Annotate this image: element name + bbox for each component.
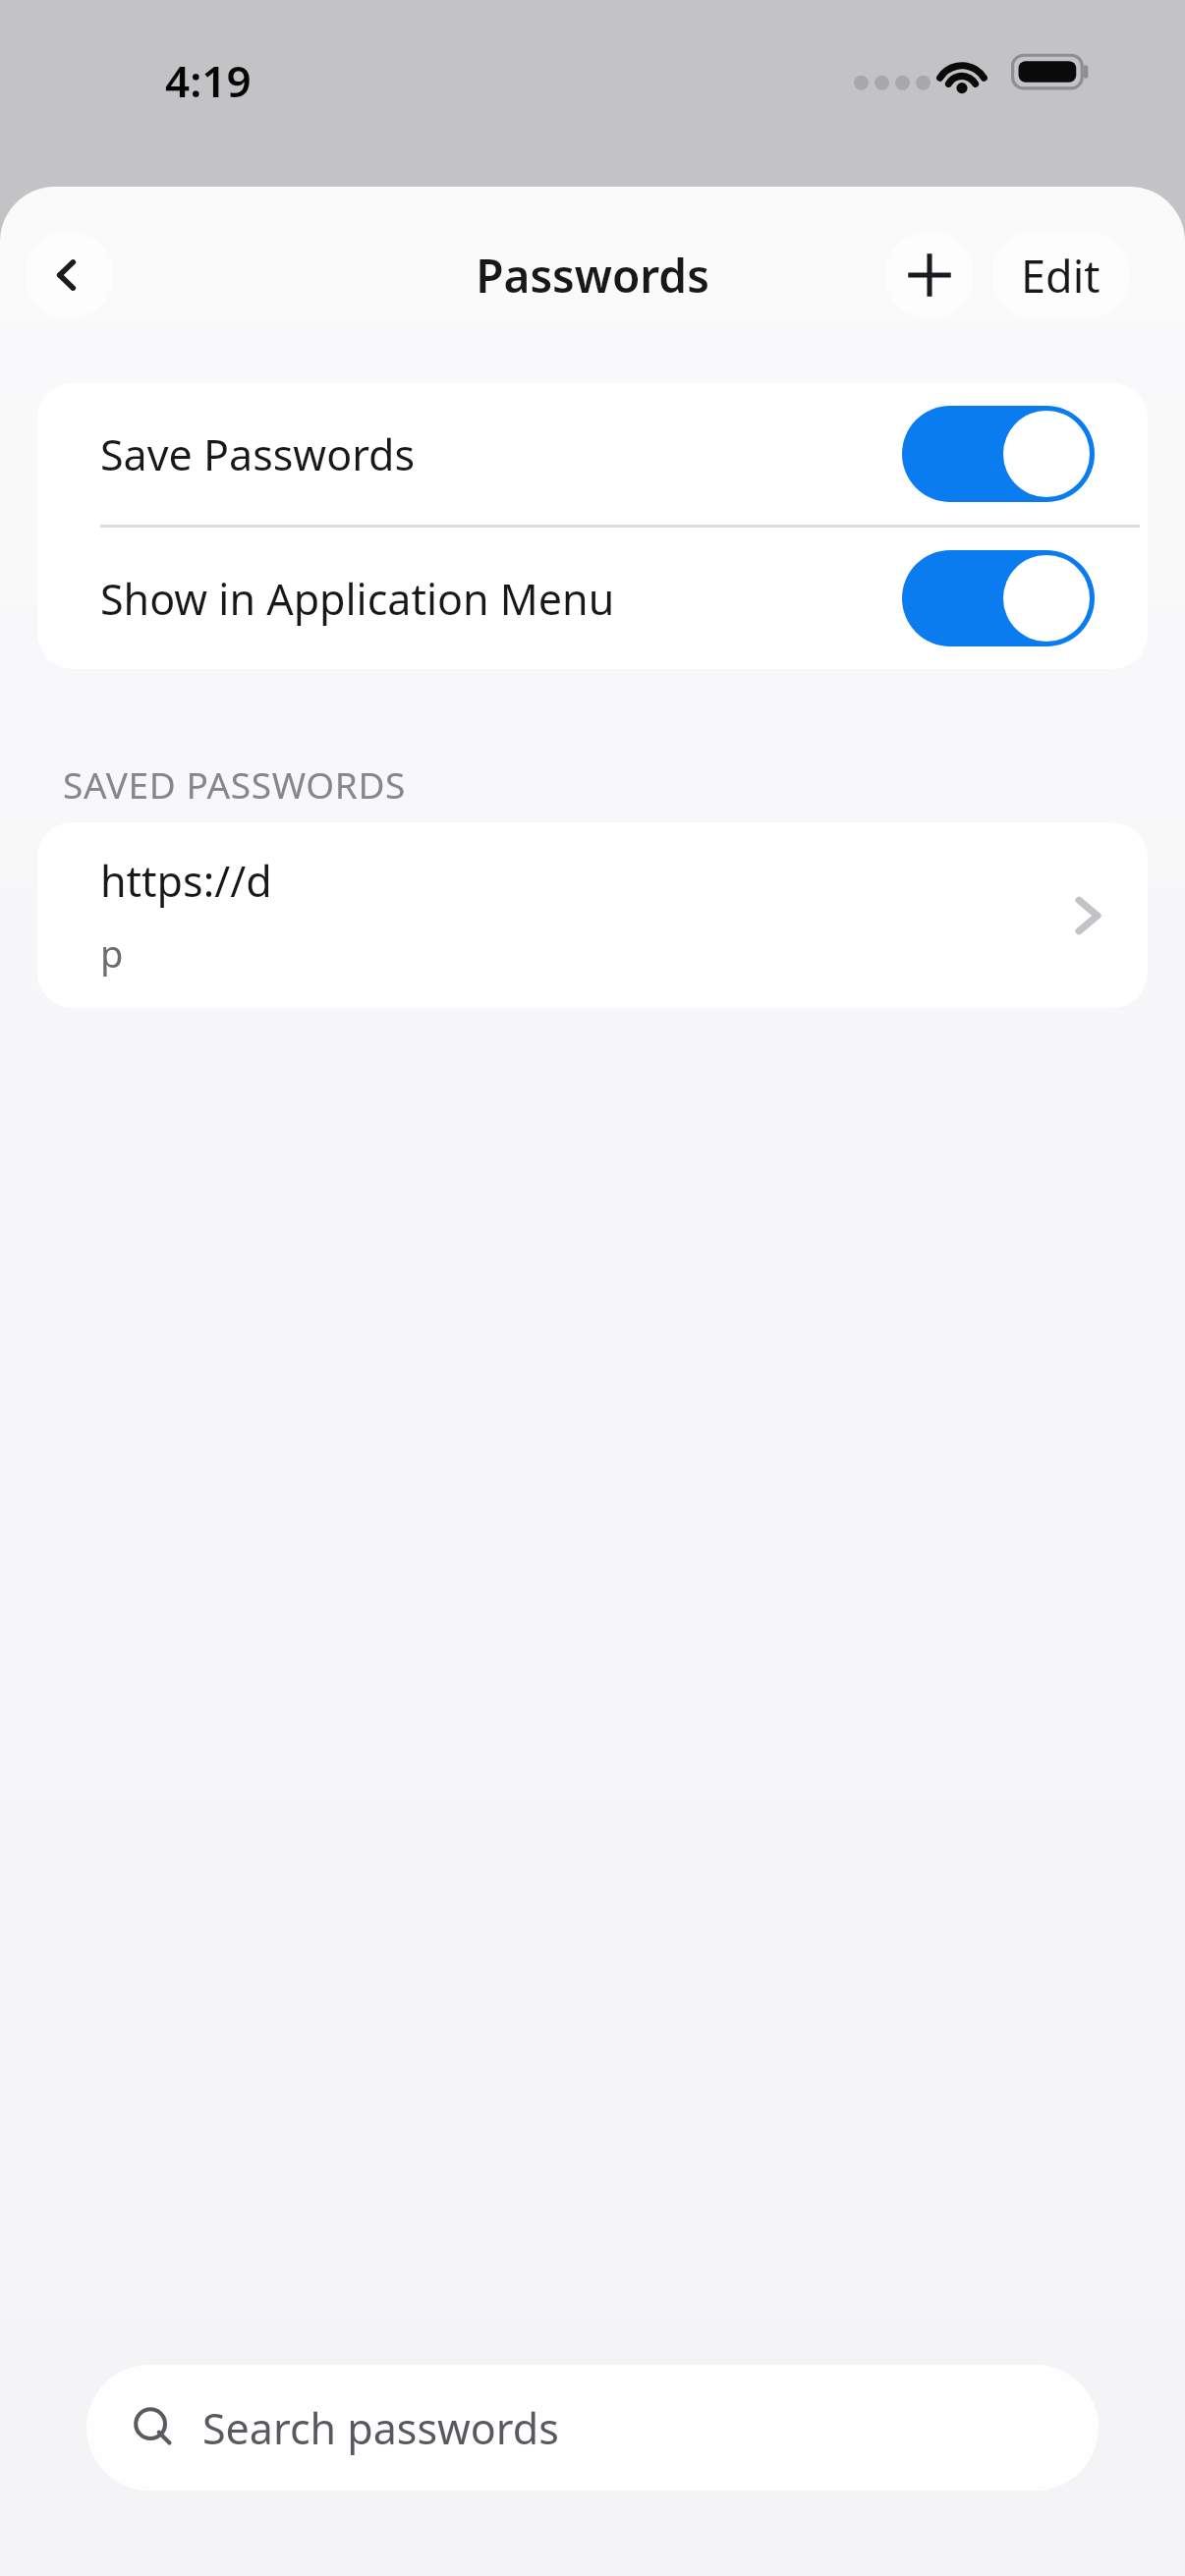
staticText: Edit [1021, 246, 1100, 306]
staticText: p [100, 927, 124, 979]
button[interactable]: Save Passwords [37, 383, 1148, 525]
staticText: https://d [100, 852, 272, 910]
staticText: Search passwords [202, 2399, 559, 2457]
staticText: Passwords [476, 245, 709, 307]
button[interactable]: Add password [885, 231, 974, 319]
staticText: Show in Application Menu [100, 570, 902, 628]
button[interactable]: Back [25, 231, 113, 319]
staticText: SAVED PASSWORDS [63, 759, 406, 809]
staticText: Save Passwords [100, 425, 902, 483]
button[interactable]: Toggle on [902, 550, 1095, 646]
button[interactable]: Edit [991, 231, 1130, 319]
button[interactable]: https://d [37, 822, 1148, 1008]
button[interactable]: Search passwords [86, 2365, 1099, 2491]
staticText: 4:19 [165, 51, 252, 110]
button[interactable]: Toggle on [902, 406, 1095, 502]
button[interactable]: Show in Application Menu [37, 528, 1148, 669]
